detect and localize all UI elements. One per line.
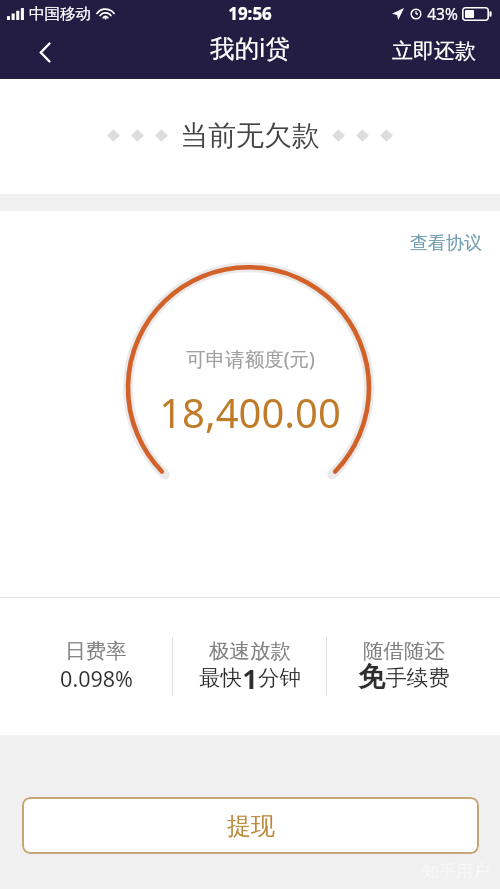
button[interactable]: 查看协议 <box>400 211 500 265</box>
staticText: 1 <box>242 660 258 697</box>
button[interactable]: 提现 <box>22 797 479 854</box>
staticText: 0.098% <box>60 664 133 693</box>
staticText: 19:56 <box>228 2 272 25</box>
button[interactable]: 极速放款 <box>173 598 326 735</box>
staticText: 分钟 <box>258 664 301 691</box>
button[interactable]: 日费率 <box>20 598 172 735</box>
staticText: 提现 <box>227 811 275 841</box>
button[interactable]: 立即还款 <box>376 27 500 79</box>
staticText: 免 <box>358 660 385 694</box>
staticText: 日费率 <box>65 638 127 664</box>
staticText: 极速放款 <box>209 638 291 664</box>
staticText: 最快 <box>199 664 242 691</box>
button[interactable]: Back <box>0 27 90 79</box>
staticText: 中国移动 <box>29 4 91 24</box>
staticText: 18,400.00 <box>159 385 341 439</box>
staticText: 43% <box>427 3 458 24</box>
staticText: 我的i贷 <box>210 31 290 64</box>
staticText: 可申请额度(元) <box>186 345 315 372</box>
staticText: 手续费 <box>385 664 450 691</box>
staticText: 随借随还 <box>363 638 445 664</box>
staticText: 当前无欠款 <box>180 118 320 153</box>
button[interactable]: 随借随还 <box>327 598 480 735</box>
staticText: 查看协议 <box>410 232 482 255</box>
staticText: 立即还款 <box>392 38 476 64</box>
